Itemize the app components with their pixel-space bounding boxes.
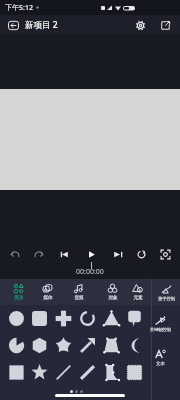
button[interactable]: Shape 3 <box>52 307 74 329</box>
button[interactable]: Export <box>157 17 173 33</box>
button[interactable]: Back <box>5 17 21 33</box>
button[interactable]: 元素 <box>123 279 151 305</box>
button[interactable]: 接手控制 <box>153 279 180 305</box>
button[interactable]: Loop <box>133 246 149 262</box>
staticText: 音频 <box>74 295 84 301</box>
button[interactable]: Undo <box>7 246 23 262</box>
staticText: 关键帧控制 <box>150 327 171 332</box>
button[interactable]: Shape 18 <box>123 361 145 383</box>
staticText: 图形 <box>14 295 24 301</box>
button[interactable]: Skip to start <box>56 246 72 262</box>
staticText: 元素 <box>133 295 143 301</box>
button[interactable]: Play <box>83 246 99 262</box>
button[interactable]: Shape 14 <box>28 361 50 383</box>
button[interactable]: Shape 12 <box>123 334 145 356</box>
button[interactable]: Shape 10 <box>76 334 98 356</box>
staticText: 接手控制 <box>158 296 175 301</box>
staticText: 新项目 2 <box>25 19 58 31</box>
button[interactable]: 对象 <box>98 279 126 305</box>
button[interactable]: Shape 17 <box>100 361 122 383</box>
button[interactable]: Fit to screen <box>157 246 173 262</box>
button[interactable]: Shape 6 <box>123 307 145 329</box>
button[interactable]: Shape 7 <box>5 334 27 356</box>
button[interactable]: Shape 9 <box>52 334 74 356</box>
button[interactable]: Shape 15 <box>52 361 74 383</box>
button[interactable]: Shape 8 <box>28 334 50 356</box>
staticText: 对象 <box>108 295 118 301</box>
button[interactable]: 关键帧控制 <box>143 315 177 332</box>
button[interactable]: 图形 <box>4 279 32 305</box>
button[interactable]: Shape 5 <box>100 307 122 329</box>
staticText: 媒体 <box>43 295 53 301</box>
button[interactable]: Settings <box>132 17 148 33</box>
button[interactable]: 文本 <box>143 349 177 366</box>
button[interactable]: 媒体 <box>33 279 61 305</box>
button[interactable]: Skip to end <box>109 246 125 262</box>
staticText: 下午5:12 <box>5 3 33 13</box>
staticText: 文本 <box>156 361 165 366</box>
button[interactable]: Redo <box>30 246 46 262</box>
button[interactable]: Shape 13 <box>5 361 27 383</box>
button[interactable]: Shape 11 <box>100 334 122 356</box>
button[interactable]: Shape 2 <box>28 307 50 329</box>
button[interactable]: Shape 1 <box>5 307 27 329</box>
staticText: 00:00:00 <box>76 267 104 277</box>
button[interactable]: Shape 4 <box>76 307 98 329</box>
button[interactable]: Shape 16 <box>76 361 98 383</box>
button[interactable]: 音频 <box>64 279 92 305</box>
